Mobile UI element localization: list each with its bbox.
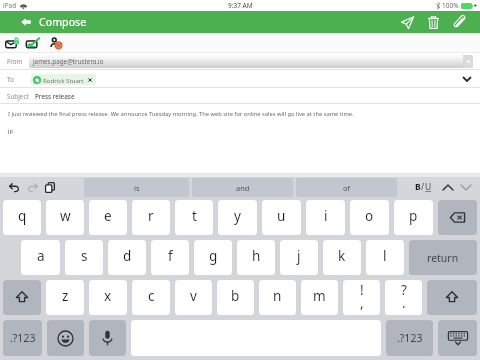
staticText: .?123 bbox=[10, 331, 36, 345]
staticText: I just reviewed the final press release.… bbox=[8, 110, 354, 118]
staticText: Compose bbox=[39, 15, 87, 29]
button[interactable]: Shift bbox=[427, 280, 477, 315]
button[interactable]: Backspace bbox=[438, 200, 477, 235]
staticText: t bbox=[192, 207, 197, 225]
staticText: Press release bbox=[35, 92, 75, 101]
button[interactable]: t bbox=[175, 200, 213, 235]
staticText: Rodrick Stuart bbox=[43, 76, 84, 84]
button[interactable]: q bbox=[3, 200, 41, 235]
button[interactable]: Delete bbox=[420, 11, 446, 33]
staticText: james.page@trustera.io bbox=[33, 57, 104, 66]
button[interactable]: c bbox=[132, 280, 170, 315]
staticText: j bbox=[297, 247, 301, 265]
staticText: To bbox=[7, 75, 14, 84]
staticText: m bbox=[313, 287, 326, 305]
button[interactable]: Previous field bbox=[440, 177, 456, 197]
button[interactable]: Paste bbox=[41, 177, 59, 197]
button[interactable]: n bbox=[259, 280, 296, 315]
button[interactable]: ! bbox=[343, 280, 380, 315]
button[interactable]: Encrypt message bbox=[2, 34, 23, 52]
staticText: q bbox=[18, 207, 27, 225]
button[interactable]: B bbox=[415, 177, 432, 197]
staticText: a bbox=[37, 247, 45, 265]
staticText: d bbox=[123, 247, 132, 265]
button[interactable]: k bbox=[323, 240, 361, 275]
button[interactable]: Next field bbox=[458, 177, 474, 197]
button[interactable]: e bbox=[89, 200, 127, 235]
button[interactable]: and bbox=[192, 178, 293, 197]
staticText: 100% bbox=[442, 1, 459, 10]
button[interactable]: j bbox=[280, 240, 318, 275]
button[interactable]: Redo bbox=[23, 177, 41, 197]
staticText: Subject bbox=[7, 92, 29, 101]
button[interactable]: p bbox=[394, 200, 433, 235]
staticText: .?123 bbox=[397, 331, 423, 345]
button[interactable]: Show more recipients bbox=[460, 72, 474, 86]
staticText: ? bbox=[401, 281, 407, 299]
staticText: B bbox=[415, 181, 421, 193]
button[interactable]: james.page@trustera.io bbox=[29, 55, 473, 68]
staticText: of bbox=[343, 183, 351, 193]
button[interactable]: Sign message bbox=[23, 34, 44, 52]
staticText: U bbox=[425, 181, 432, 193]
button[interactable]: l bbox=[366, 240, 404, 275]
button[interactable]: s bbox=[65, 240, 103, 275]
button[interactable]: Attach file bbox=[446, 11, 472, 33]
button[interactable]: of bbox=[296, 178, 397, 197]
staticText: b bbox=[231, 287, 240, 305]
staticText: jp bbox=[8, 127, 14, 135]
button[interactable]: h bbox=[237, 240, 275, 275]
staticText: From bbox=[7, 57, 23, 66]
staticText: e bbox=[104, 207, 112, 225]
button[interactable]: .?123 bbox=[386, 320, 433, 356]
button[interactable]: g bbox=[194, 240, 232, 275]
staticText: h bbox=[252, 247, 261, 265]
staticText: g bbox=[209, 247, 218, 265]
button[interactable]: b bbox=[217, 280, 254, 315]
button[interactable]: Shift bbox=[3, 280, 41, 315]
button[interactable]: r bbox=[132, 200, 170, 235]
button[interactable]: Undo bbox=[5, 177, 23, 197]
button[interactable]: o bbox=[350, 200, 389, 235]
staticText: k bbox=[338, 247, 346, 265]
staticText: w bbox=[60, 207, 71, 225]
button[interactable]: Send bbox=[394, 11, 420, 33]
button[interactable]: is bbox=[84, 178, 189, 197]
button[interactable]: d bbox=[108, 240, 146, 275]
staticText: n bbox=[273, 287, 282, 305]
button[interactable]: w bbox=[46, 200, 84, 235]
button[interactable]: a bbox=[21, 240, 60, 275]
staticText: f bbox=[168, 247, 173, 265]
button[interactable]: v bbox=[175, 280, 212, 315]
button[interactable]: x bbox=[89, 280, 127, 315]
staticText: . bbox=[402, 294, 406, 312]
button[interactable]: u bbox=[262, 200, 301, 235]
staticText: z bbox=[62, 287, 69, 305]
staticText: y bbox=[234, 207, 241, 225]
button[interactable]: ? bbox=[385, 280, 422, 315]
button[interactable]: Rodrick Stuart bbox=[31, 74, 96, 85]
button[interactable]: f bbox=[151, 240, 189, 275]
button[interactable]: Hide keyboard bbox=[438, 320, 477, 356]
button[interactable]: Back bbox=[13, 11, 39, 33]
button[interactable]: z bbox=[46, 280, 84, 315]
staticText: iPad bbox=[3, 1, 17, 10]
staticText: u bbox=[277, 207, 286, 225]
staticText: s bbox=[81, 247, 88, 265]
button[interactable]: Block contact bbox=[47, 34, 68, 52]
button[interactable]: return bbox=[409, 240, 477, 275]
staticText: c bbox=[148, 287, 155, 305]
staticText: , bbox=[360, 294, 364, 312]
staticText: return bbox=[427, 251, 459, 265]
button[interactable]: .?123 bbox=[3, 320, 42, 356]
button[interactable]: m bbox=[301, 280, 338, 315]
button[interactable]: Emoji bbox=[47, 320, 84, 356]
button[interactable]: Dictation bbox=[89, 320, 126, 356]
staticText: l bbox=[383, 247, 387, 265]
button[interactable]: i bbox=[306, 200, 345, 235]
staticText: i bbox=[324, 207, 328, 225]
staticText: and bbox=[236, 183, 250, 193]
staticText: ! bbox=[360, 281, 364, 299]
button[interactable]: y bbox=[218, 200, 257, 235]
